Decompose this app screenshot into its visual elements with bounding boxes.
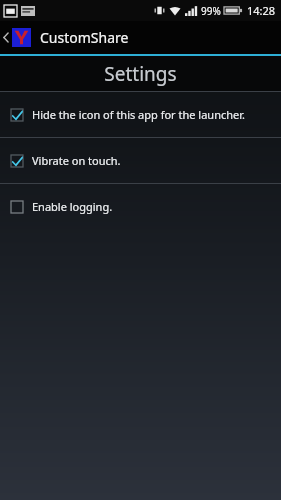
staticText: 99%: [201, 4, 221, 18]
staticText: CustomShare: [40, 28, 129, 47]
button[interactable]: Hide the icon of this app for the launch…: [0, 92, 281, 137]
staticText: 14:28: [247, 3, 276, 18]
staticText: Settings: [104, 61, 177, 87]
staticText: Vibrate on touch.: [32, 153, 121, 168]
button[interactable]: Navigate up: [0, 21, 12, 54]
button[interactable]: Vibrate on touch.: [0, 138, 281, 183]
staticText: Hide the icon of this app for the launch…: [32, 107, 245, 122]
button[interactable]: Enable logging.: [0, 184, 281, 229]
staticText: Enable logging.: [32, 199, 113, 214]
